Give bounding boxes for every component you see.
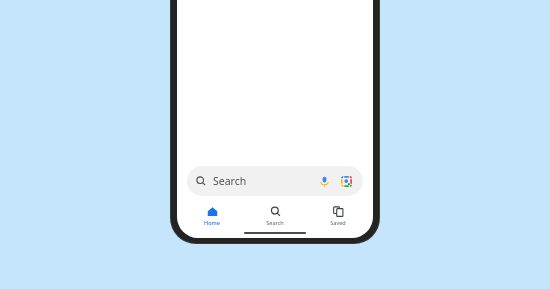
staticText: Saved xyxy=(330,219,346,226)
staticText: Search xyxy=(213,174,247,188)
staticText: Search xyxy=(266,219,284,226)
button[interactable]: Saved xyxy=(310,205,366,227)
button[interactable]: Search xyxy=(187,166,363,196)
button[interactable]: Home xyxy=(184,205,240,227)
button[interactable]: Voice search xyxy=(316,173,332,189)
button[interactable]: Google Lens xyxy=(338,173,354,189)
staticText: Home xyxy=(204,219,220,226)
button[interactable]: Search xyxy=(247,205,303,227)
